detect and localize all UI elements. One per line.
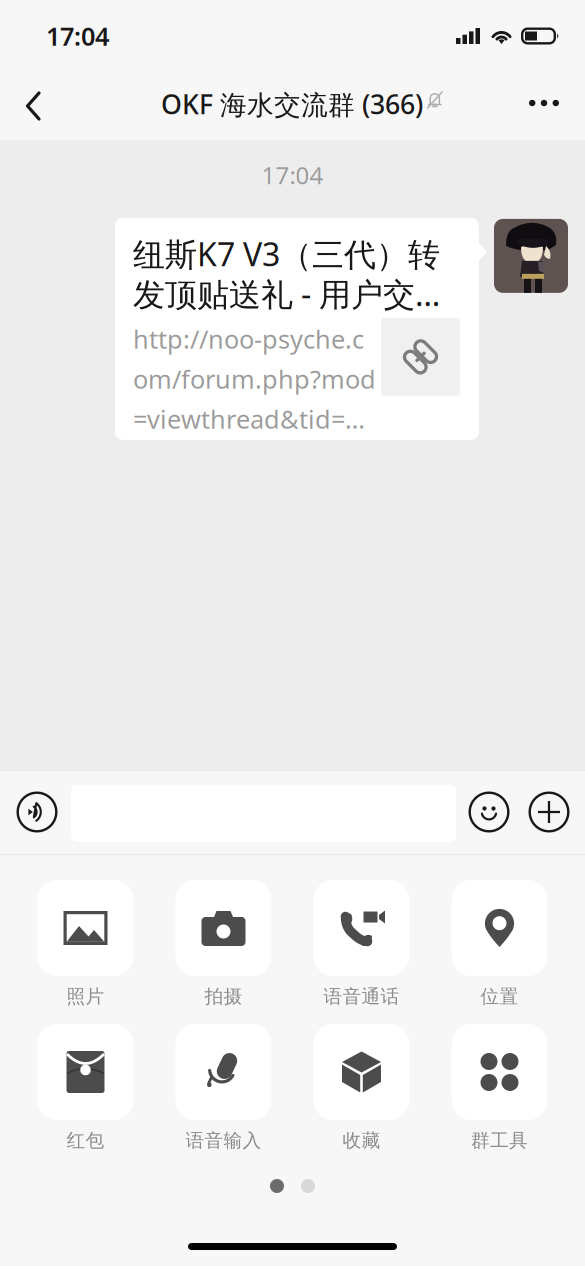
staticText: 位置 xyxy=(480,985,518,1008)
staticText: 群工具 xyxy=(471,1129,528,1152)
staticText: OKF 海水交流群 (366) xyxy=(161,86,423,122)
staticText: 拍摄 xyxy=(204,985,242,1008)
staticText: 收藏 xyxy=(342,1129,380,1152)
button[interactable]: 红包 xyxy=(16,1024,154,1168)
button[interactable]: Back xyxy=(0,72,64,140)
staticText: 红包 xyxy=(66,1129,104,1152)
staticText: 语音通话 xyxy=(323,985,399,1008)
staticText: 17:04 xyxy=(261,159,323,191)
button[interactable]: 语音输入 xyxy=(154,1024,292,1168)
button[interactable]: More options xyxy=(521,784,577,840)
button[interactable]: More xyxy=(517,72,585,140)
button[interactable]: 拍摄 xyxy=(154,880,292,1024)
staticText: http://noo-psyche.c xyxy=(133,322,364,356)
staticText: =viewthread&tid=… xyxy=(133,402,365,436)
button[interactable]: 群工具 xyxy=(430,1024,568,1168)
staticText: 纽斯K7 V3（三代）转 xyxy=(133,233,440,275)
button[interactable]: Voice message xyxy=(9,784,65,840)
button[interactable]: 照片 xyxy=(16,880,154,1024)
button[interactable]: 收藏 xyxy=(292,1024,430,1168)
staticText: 发顶贴送礼 - 用户交… xyxy=(133,273,440,315)
staticText: 照片 xyxy=(66,985,104,1008)
button[interactable]: Emoji xyxy=(461,784,517,840)
staticText: 语音输入 xyxy=(185,1129,261,1152)
button[interactable]: 语音通话 xyxy=(292,880,430,1024)
staticText: om/forum.php?mod xyxy=(133,362,376,396)
staticText: 17:04 xyxy=(46,19,109,53)
button[interactable]: 位置 xyxy=(430,880,568,1024)
